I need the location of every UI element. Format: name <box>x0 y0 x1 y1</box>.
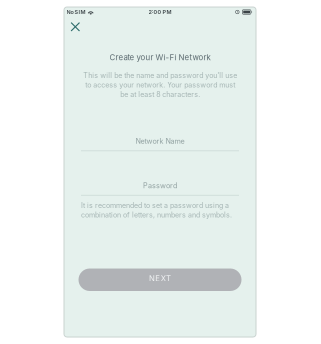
button[interactable]: Network Name <box>81 133 239 151</box>
staticText: No SIM <box>66 9 85 15</box>
staticText: Network Name <box>135 137 184 145</box>
button[interactable]: NEXT <box>78 268 241 291</box>
staticText: This will be the name and password you'l… <box>83 71 237 99</box>
staticText: 2:00 PM <box>148 9 171 15</box>
staticText: NEXT <box>149 274 171 283</box>
button[interactable]: Close <box>64 17 86 37</box>
staticText: Password <box>143 181 177 190</box>
staticText: It is recommended to set a password usin… <box>81 201 232 219</box>
staticText: Create your Wi-Fi Network <box>109 53 210 62</box>
button[interactable]: Password <box>81 177 239 196</box>
